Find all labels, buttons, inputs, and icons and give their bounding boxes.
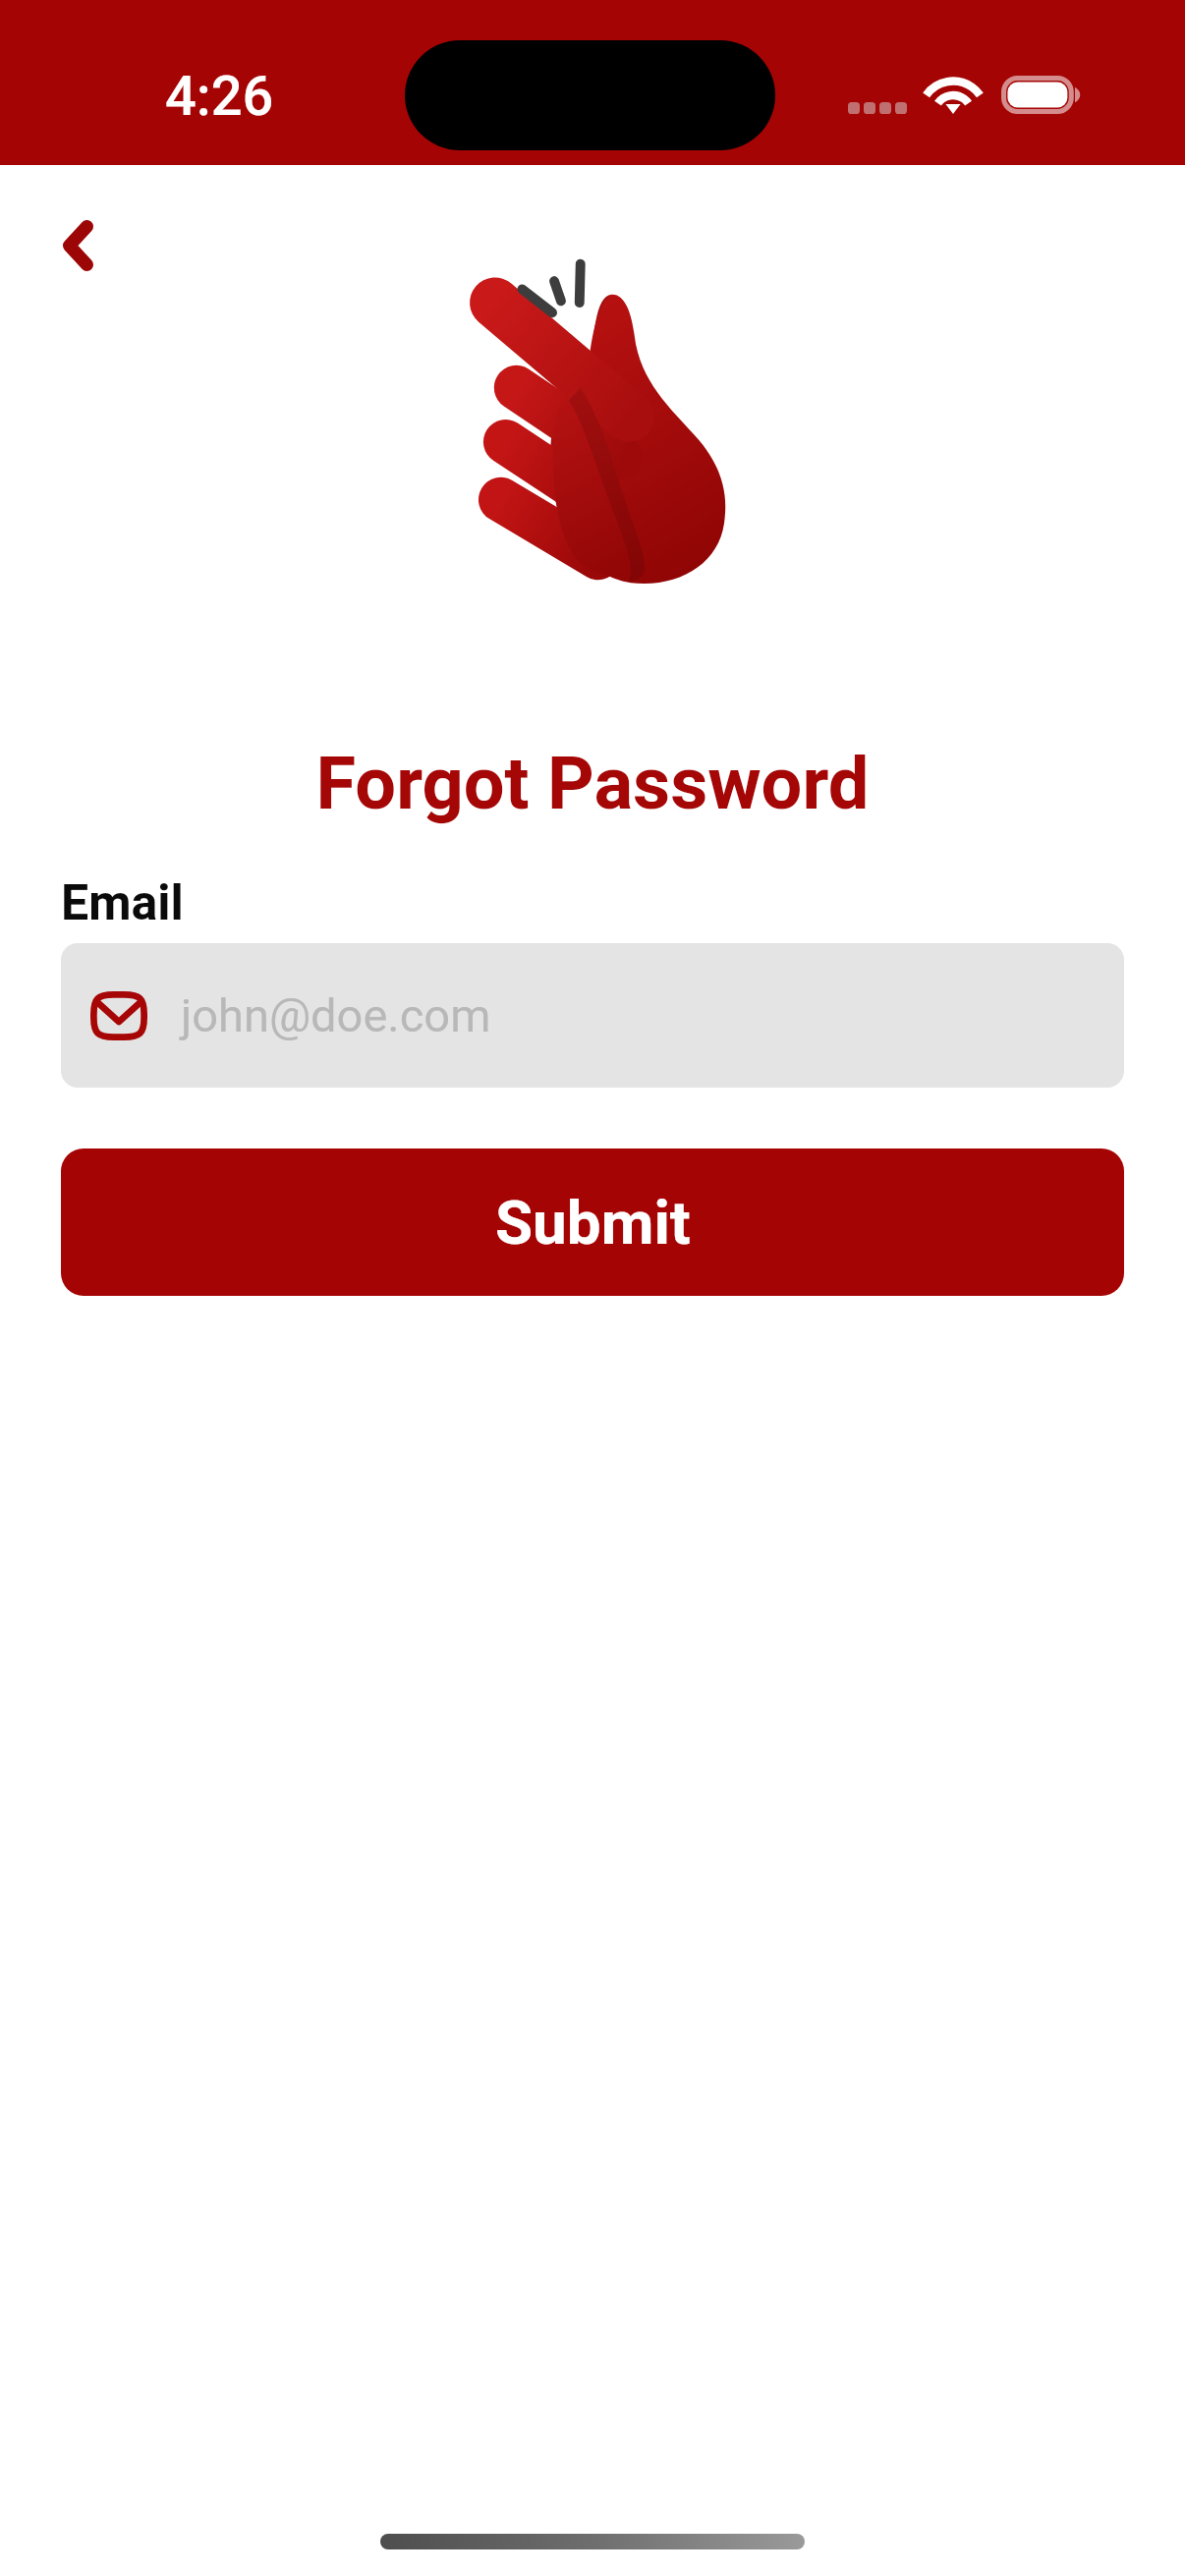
button[interactable]: Back	[38, 206, 117, 285]
staticText: john@doe.com	[181, 988, 491, 1042]
button[interactable]: john@doe.com	[61, 943, 1124, 1088]
staticText: Forgot Password	[0, 741, 1185, 826]
staticText: Submit	[495, 1187, 691, 1259]
staticText: Email	[61, 874, 184, 932]
button[interactable]: Submit	[61, 1148, 1124, 1296]
staticText: 4:26	[165, 64, 274, 129]
